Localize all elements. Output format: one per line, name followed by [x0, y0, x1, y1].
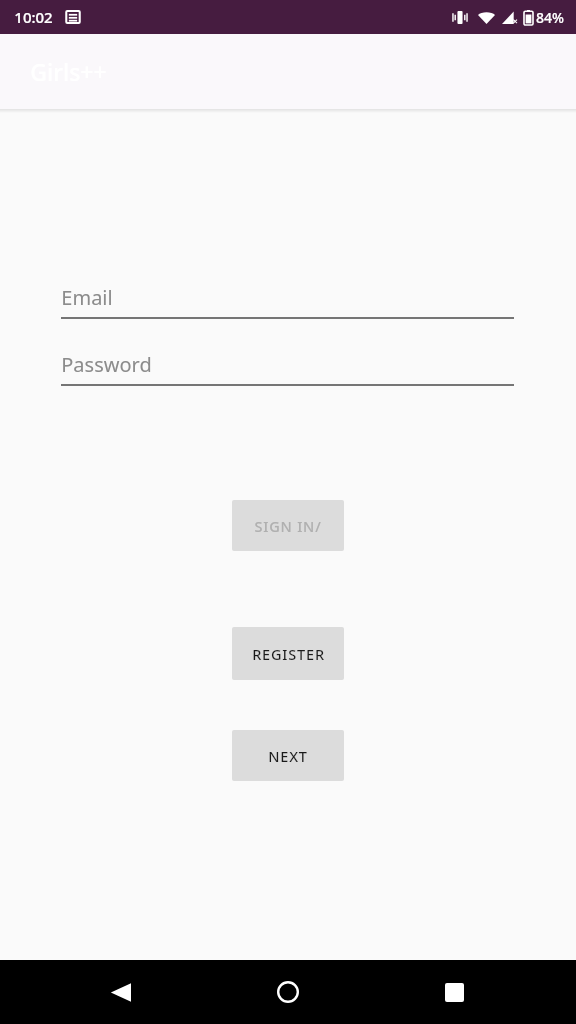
button[interactable]: NEXT: [232, 730, 344, 781]
button[interactable]: SIGN IN/: [232, 500, 344, 551]
button[interactable]: Recent apps: [424, 962, 484, 1022]
staticText: 84%: [536, 8, 564, 27]
staticText: SIGN IN/: [254, 516, 322, 536]
staticText: REGISTER: [252, 644, 325, 664]
button[interactable]: Password: [61, 348, 514, 386]
staticText: Password: [61, 351, 152, 378]
button[interactable]: REGISTER: [232, 627, 344, 680]
staticText: NEXT: [268, 746, 308, 766]
button[interactable]: Back: [90, 962, 150, 1022]
button[interactable]: Email: [61, 281, 514, 319]
button[interactable]: Home: [258, 962, 318, 1022]
staticText: 10:02: [14, 7, 53, 27]
staticText: Email: [61, 284, 113, 311]
